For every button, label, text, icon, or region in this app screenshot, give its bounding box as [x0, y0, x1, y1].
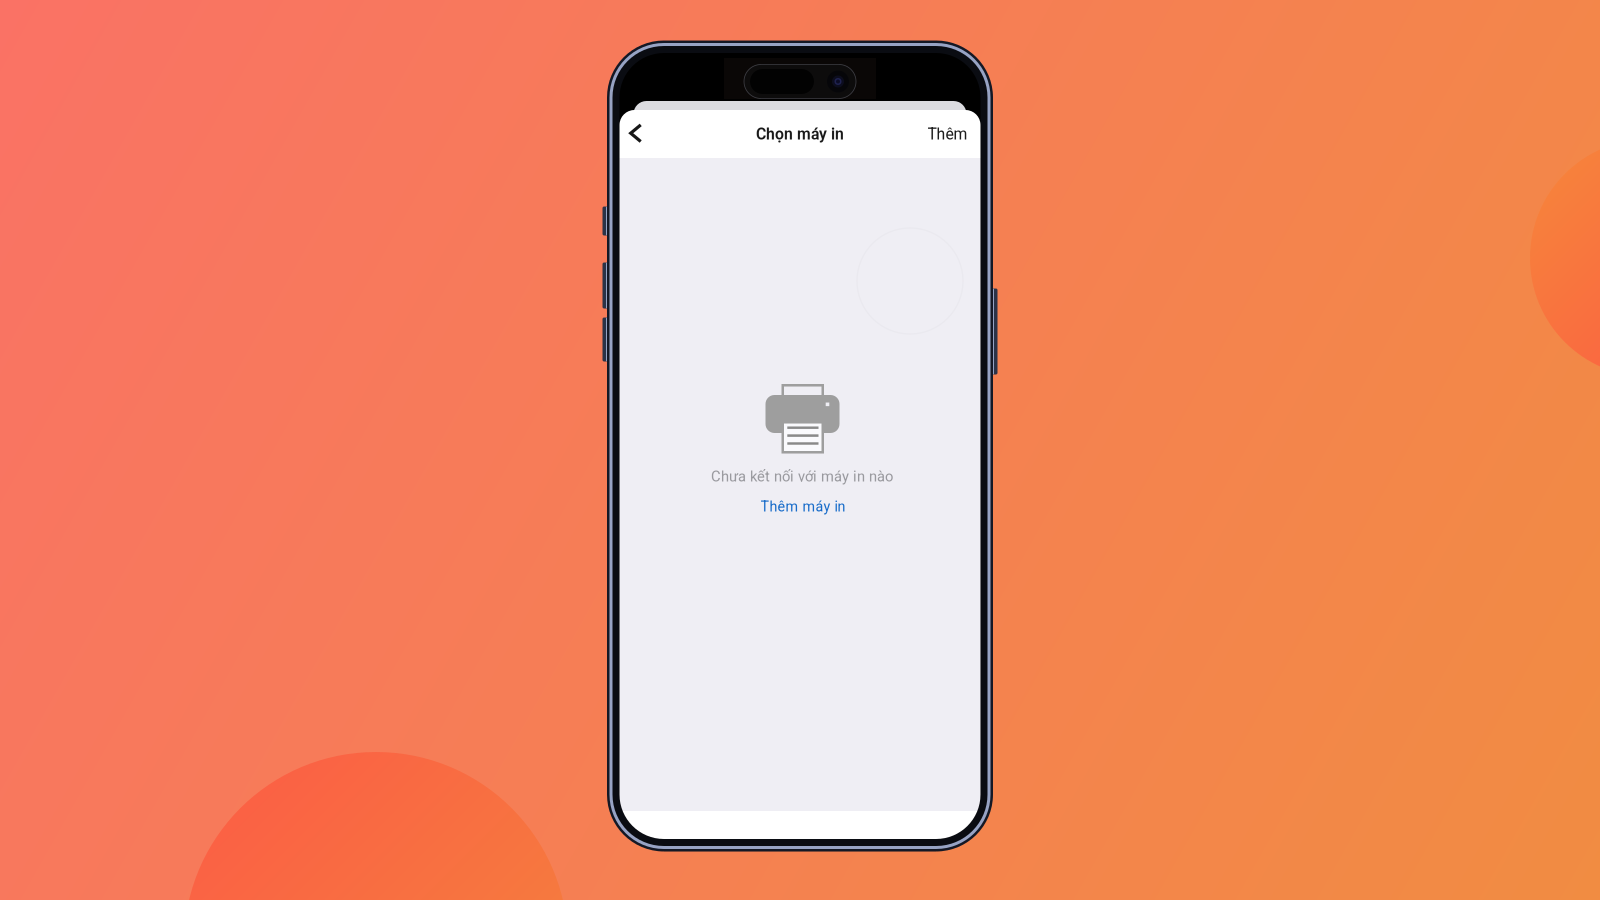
staticText: Thêm [927, 125, 967, 143]
staticText: Thêm máy in [760, 498, 845, 515]
staticText: Chưa kết nối với máy in nào [711, 468, 893, 485]
button[interactable]: Back [619, 110, 659, 158]
staticText: Chọn máy in [756, 125, 844, 143]
button[interactable]: Thêm máy in [741, 485, 858, 521]
button[interactable]: Thêm [927, 110, 980, 158]
